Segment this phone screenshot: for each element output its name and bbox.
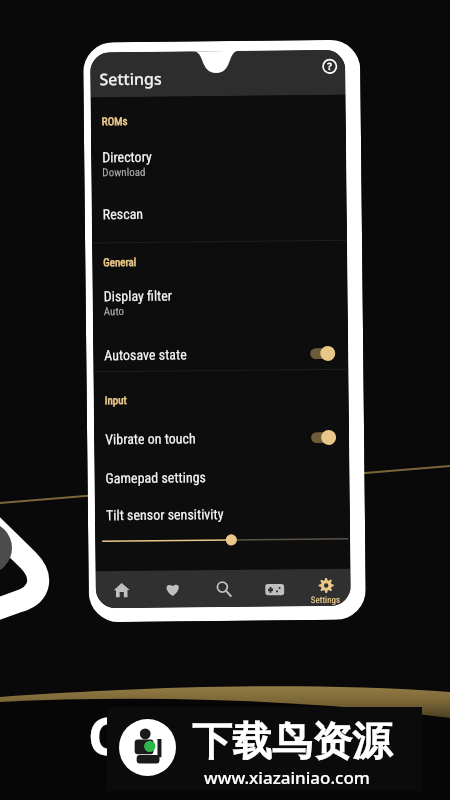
staticText: Settings	[311, 595, 341, 606]
staticText: ROMs	[102, 115, 128, 128]
staticText: Directory	[102, 149, 152, 165]
staticText: ?	[327, 59, 332, 73]
staticText: Vibrate on touch	[105, 430, 196, 447]
staticText: Auto	[104, 305, 125, 318]
staticText: 下载鸟资源	[192, 716, 392, 766]
staticText: General	[103, 256, 137, 269]
button[interactable]: Settings	[299, 569, 351, 606]
button[interactable]: Rescan	[91, 177, 347, 231]
button[interactable]: Help	[318, 55, 340, 77]
button[interactable]: Favorites	[146, 570, 198, 608]
button[interactable]: Games	[248, 569, 300, 607]
staticText: Tilt sensor sensitivity	[106, 506, 224, 523]
button[interactable]: Home	[95, 571, 147, 608]
button[interactable]: Vibrate on touch	[94, 405, 349, 453]
button[interactable]: Directory	[91, 126, 346, 179]
staticText: C	[88, 699, 122, 770]
button[interactable]: Autosave state	[93, 316, 348, 371]
button[interactable]: Gamepad settings	[94, 451, 350, 491]
staticText: Autosave state	[104, 346, 187, 363]
staticText: Display filter	[103, 287, 173, 304]
staticText: Rescan	[103, 206, 144, 222]
button[interactable]: Search	[197, 570, 249, 607]
button[interactable]: Display filter	[92, 267, 348, 318]
staticText: www.xiazainiao.com	[204, 766, 370, 789]
staticText: Gamepad settings	[105, 469, 207, 486]
staticText: Download	[102, 166, 146, 179]
button[interactable]	[95, 530, 350, 552]
staticText: Input	[105, 394, 128, 407]
button[interactable]: Tilt sensor sensitivity	[95, 489, 350, 532]
staticText: Settings	[99, 68, 162, 90]
